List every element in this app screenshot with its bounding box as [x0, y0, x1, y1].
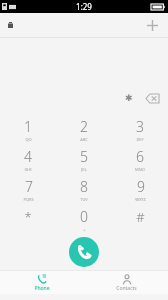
staticText: JKL	[81, 167, 87, 172]
staticText: 2	[80, 117, 88, 136]
staticText: PQRS	[23, 197, 34, 202]
staticText: 3	[136, 117, 144, 136]
staticText: 1:29	[76, 1, 92, 12]
staticText: 4	[24, 147, 32, 166]
button[interactable]: 1	[0, 114, 56, 144]
button[interactable]: 8	[56, 174, 112, 204]
staticText: *	[24, 208, 32, 226]
button[interactable]: *	[0, 204, 56, 234]
button[interactable]: Contacts	[84, 271, 168, 294]
button[interactable]: 9	[112, 174, 168, 204]
staticText: #	[136, 208, 145, 226]
staticText: 6	[136, 147, 144, 166]
staticText: DEF	[136, 137, 144, 142]
staticText: 0	[80, 207, 88, 226]
staticText: ABC	[80, 137, 88, 142]
staticText: QO	[25, 137, 32, 142]
button[interactable]: #	[112, 204, 168, 234]
staticText: GHI	[24, 167, 32, 172]
button[interactable]: 7	[0, 174, 56, 204]
staticText: +	[83, 227, 86, 232]
staticText: 9	[137, 177, 145, 196]
button[interactable]: 6	[112, 144, 168, 174]
staticText: ✱	[125, 93, 133, 103]
staticText: Contacts	[116, 285, 137, 292]
button[interactable]: Backspace	[142, 88, 162, 108]
button[interactable]: 2	[56, 114, 112, 144]
staticText: 1	[24, 117, 32, 136]
button[interactable]: 5	[56, 144, 112, 174]
staticText: Phone	[34, 285, 50, 292]
staticText: TUV	[80, 197, 88, 202]
staticText: 5	[80, 147, 88, 166]
button[interactable]: Add contact	[142, 15, 162, 35]
button[interactable]: Call	[69, 237, 99, 267]
staticText: WXYZ	[135, 197, 146, 202]
button[interactable]: Phone	[0, 271, 84, 294]
button[interactable]: 3	[112, 114, 168, 144]
button[interactable]: Voicemail	[120, 89, 138, 107]
button[interactable]: 0	[56, 204, 112, 234]
button[interactable]: 4	[0, 144, 56, 174]
staticText: 7	[25, 177, 33, 196]
staticText: MNO	[135, 167, 145, 172]
staticText: 8	[80, 177, 88, 196]
